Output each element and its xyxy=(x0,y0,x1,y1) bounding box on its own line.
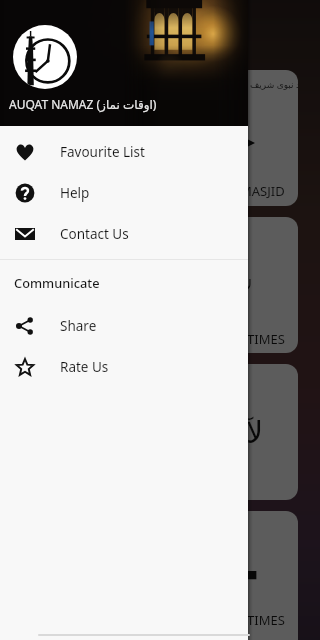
button[interactable]: ﻻ xyxy=(14,217,298,353)
staticText: Contact Us xyxy=(60,225,129,243)
button[interactable]: Share xyxy=(0,305,248,346)
staticText: Rate Us xyxy=(60,358,109,376)
button[interactable]: TIMES xyxy=(14,511,298,640)
button[interactable]: ﻵ xyxy=(14,364,298,500)
staticText: Help xyxy=(60,184,90,202)
staticText: ﻵ xyxy=(246,415,264,450)
button[interactable]: مسجد نبوی شریف xyxy=(14,70,298,206)
staticText: ﻻ xyxy=(244,277,252,293)
button[interactable]: Help xyxy=(0,172,248,213)
staticText: TIMES xyxy=(247,330,285,348)
staticText: TIMES xyxy=(247,611,285,629)
button[interactable]: Contact Us xyxy=(0,213,248,254)
staticText: MASJID xyxy=(240,182,285,200)
button[interactable]: Rate Us xyxy=(0,346,248,387)
staticText: Favourite List xyxy=(60,143,145,161)
staticText: AUQAT NAMAZ (اوقات نماز) xyxy=(9,96,157,112)
staticText: مسجد نبوی شریف xyxy=(250,78,298,90)
staticText: Share xyxy=(60,317,97,335)
button[interactable]: Favourite List xyxy=(0,131,248,172)
staticText: Communicate xyxy=(14,274,100,291)
